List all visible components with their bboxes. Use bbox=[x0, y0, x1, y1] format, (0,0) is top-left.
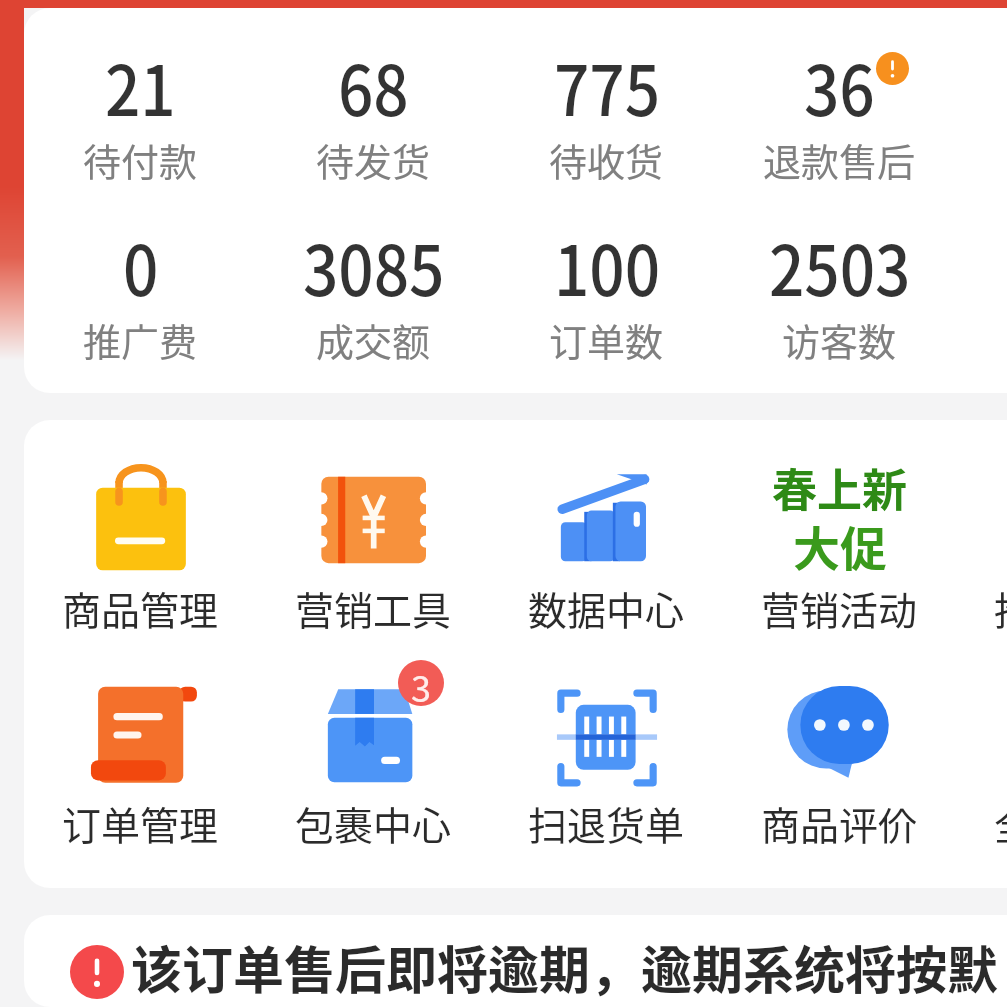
staticText: 36 bbox=[804, 36, 875, 136]
button[interactable]: 订单管理 bbox=[24, 669, 257, 855]
button[interactable]: 21 bbox=[24, 36, 257, 191]
staticText: 包裹中心 bbox=[295, 795, 452, 851]
button[interactable]: 100 bbox=[490, 216, 723, 371]
button[interactable]: 775 bbox=[490, 36, 723, 191]
staticText: 待发货 bbox=[316, 132, 431, 187]
staticText: 2503 bbox=[769, 216, 911, 316]
staticText: 全荐管理 bbox=[994, 795, 1007, 851]
button[interactable]: 商品评价 bbox=[723, 669, 956, 855]
staticText: 春上新 bbox=[772, 455, 908, 520]
button[interactable]: 推荐管理 bbox=[956, 454, 1007, 640]
button[interactable]: 2503 bbox=[723, 216, 956, 371]
button[interactable]: 营销工具 bbox=[257, 454, 490, 640]
button[interactable]: 3 bbox=[257, 669, 490, 855]
staticText: 大促 bbox=[793, 511, 887, 579]
staticText: 68 bbox=[338, 36, 409, 136]
staticText: 订单数 bbox=[549, 312, 664, 367]
button[interactable]: 68 bbox=[257, 36, 490, 191]
staticText: 访客数 bbox=[782, 312, 897, 367]
button[interactable]: 数据中心 bbox=[490, 454, 723, 640]
staticText: 营销工具 bbox=[295, 580, 452, 636]
button[interactable]: 36 bbox=[723, 36, 956, 191]
staticText: 推荐管理 bbox=[994, 580, 1007, 636]
staticText: 营销活动 bbox=[761, 580, 918, 636]
staticText: 商品管理 bbox=[62, 580, 219, 636]
staticText: 数据中心 bbox=[528, 580, 685, 636]
button[interactable]: 春上新 bbox=[723, 454, 956, 640]
button[interactable]: 0 bbox=[24, 216, 257, 371]
staticText: 成交额 bbox=[316, 312, 431, 367]
staticText: 待收货 bbox=[549, 132, 664, 187]
staticText: 21 bbox=[105, 36, 176, 136]
staticText: 3085 bbox=[303, 216, 445, 316]
button[interactable]: 商品管理 bbox=[24, 454, 257, 640]
button[interactable]: 该订单售后即将逾期，逾期系统将按默 bbox=[24, 915, 1007, 1007]
staticText: 775 bbox=[554, 36, 660, 136]
staticText: 待付款 bbox=[83, 132, 198, 187]
button[interactable]: 3085 bbox=[257, 216, 490, 371]
button[interactable]: 扫退货单 bbox=[490, 669, 723, 855]
staticText: 退款售后 bbox=[763, 132, 916, 187]
staticText: 推广费 bbox=[83, 312, 198, 367]
button[interactable]: 全荐管理 bbox=[956, 669, 1007, 855]
staticText: 商品评价 bbox=[761, 795, 918, 851]
staticText: 订单管理 bbox=[62, 795, 219, 851]
staticText: 100 bbox=[554, 216, 660, 316]
staticText: 该订单售后即将逾期，逾期系统将按默 bbox=[131, 930, 999, 1004]
staticText: 扫退货单 bbox=[528, 795, 685, 851]
staticText: 3 bbox=[411, 660, 431, 706]
staticText: 0 bbox=[123, 216, 159, 316]
